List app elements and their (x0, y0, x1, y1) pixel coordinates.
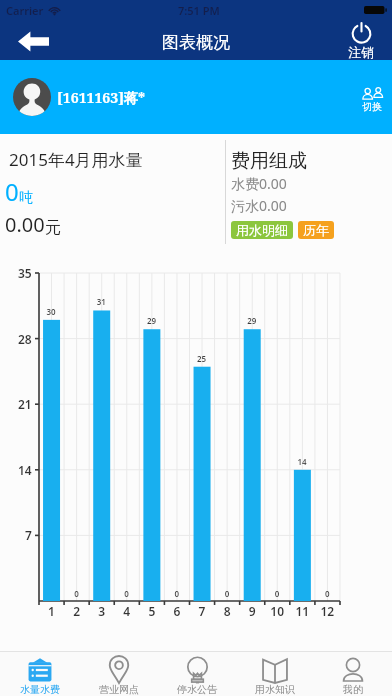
staticText: 2015年4月用水量 (9, 148, 143, 171)
staticText: 切换 (362, 100, 382, 113)
staticText: 水量水费 (20, 683, 60, 696)
staticText: 用水明细 (236, 222, 288, 238)
button[interactable]: 用水知识 (236, 652, 314, 696)
staticText: 历年 (303, 222, 329, 238)
staticText: 费用组成 (231, 149, 307, 173)
staticText: 7:51 PM (178, 3, 220, 18)
staticText: 水费0.00 (231, 174, 287, 193)
staticText: 0 (5, 175, 19, 208)
button[interactable]: 停水公告 (158, 652, 236, 696)
button[interactable]: 水量水费 (0, 652, 79, 696)
staticText: Carrier (6, 3, 44, 18)
staticText: 元 (45, 218, 61, 238)
staticText: 0.00 (5, 211, 45, 238)
button[interactable]: 历年 (298, 221, 334, 239)
staticText: 污水0.00 (231, 196, 287, 215)
button[interactable]: 营业网点 (79, 652, 158, 696)
staticText: 停水公告 (177, 683, 217, 696)
button[interactable]: 注销 (348, 22, 374, 60)
staticText: 用水知识 (255, 683, 295, 696)
button[interactable]: 用水明细 (231, 221, 293, 239)
staticText: 我的 (343, 683, 363, 696)
button[interactable]: 我的 (314, 652, 392, 696)
staticText: 图表概况 (162, 32, 230, 53)
staticText: 吨 (19, 189, 33, 207)
staticText: [1611163]蒋* (57, 88, 146, 107)
staticText: 注销 (348, 44, 374, 60)
staticText: 营业网点 (99, 683, 139, 696)
button[interactable]: 切换 (358, 85, 386, 115)
button[interactable]: Back (16, 24, 50, 58)
